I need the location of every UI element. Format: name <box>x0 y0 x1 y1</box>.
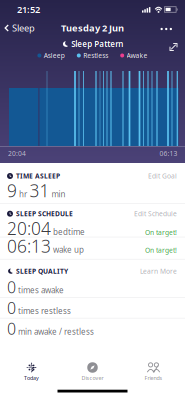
staticText: 21:52 <box>17 3 40 16</box>
staticText: Learn More <box>140 267 177 276</box>
staticText: On target! <box>145 228 177 237</box>
staticText: Edit Goal <box>148 172 177 180</box>
staticText: wake up <box>53 244 84 255</box>
staticText: 0 <box>7 318 16 339</box>
staticText: Restless <box>83 51 108 60</box>
staticText: SLEEP SCHEDULE <box>16 209 73 218</box>
staticText: times restless <box>18 306 71 316</box>
staticText: hr <box>19 189 27 199</box>
button[interactable]: Discover <box>62 362 123 382</box>
staticText: bedtime <box>53 226 85 237</box>
staticText: 20:04 <box>8 149 26 158</box>
staticText: Sleep Pattern <box>71 39 123 49</box>
staticText: Edit Schedule <box>134 209 177 218</box>
button[interactable]: Learn More <box>140 267 177 276</box>
staticText: 31 <box>29 179 49 202</box>
staticText: SLEEP QUALITY <box>16 267 68 276</box>
staticText: TIME ASLEEP <box>16 172 60 180</box>
staticText: min awake / restless <box>18 326 94 337</box>
staticText: 06:13 <box>7 234 51 257</box>
button[interactable]: Friends <box>123 362 184 382</box>
staticText: times awake <box>18 285 64 295</box>
staticText: Friends <box>144 374 162 382</box>
staticText: On target! <box>145 246 177 254</box>
staticText: 0 <box>7 276 16 298</box>
staticText: 20:04 <box>7 217 51 240</box>
staticText: Sleep <box>12 22 35 34</box>
button[interactable] <box>169 36 185 51</box>
staticText: Tuesday 2 Jun <box>61 22 124 34</box>
staticText: 9 <box>7 179 17 202</box>
staticText: Today <box>24 374 39 382</box>
button[interactable]: Edit Schedule <box>134 209 177 218</box>
staticText: 06:13 <box>159 149 177 158</box>
button[interactable]: Sleep <box>0 22 35 34</box>
staticText: Awake <box>127 51 148 60</box>
staticText: min <box>51 189 65 199</box>
staticText: Asleep <box>44 51 65 60</box>
button[interactable]: Today <box>1 362 62 382</box>
button[interactable] <box>160 26 185 30</box>
button[interactable]: Edit Goal <box>148 172 177 180</box>
staticText: Discover <box>81 374 103 382</box>
staticText: 0 <box>7 297 16 318</box>
